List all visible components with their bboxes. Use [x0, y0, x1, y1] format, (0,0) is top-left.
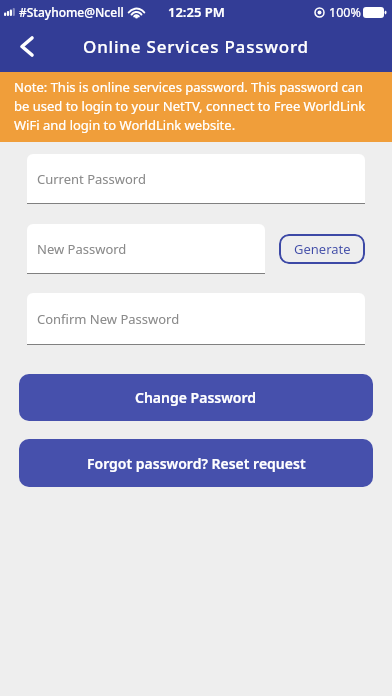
- staticText: Generate: [294, 240, 351, 258]
- button[interactable]: Change Password: [19, 374, 373, 421]
- staticText: 12:25 PM: [168, 3, 225, 21]
- staticText: #Stayhome@Ncell: [19, 4, 124, 20]
- button[interactable]: Generate: [279, 234, 365, 264]
- staticText: Change Password: [135, 388, 257, 407]
- staticText: Note: This is online services password. …: [14, 78, 378, 134]
- button[interactable]: Forgot password? Reset request: [19, 439, 373, 487]
- button[interactable]: Confirm New Password: [27, 293, 365, 345]
- button[interactable]: Current Password: [27, 154, 365, 204]
- staticText: New Password: [37, 240, 127, 258]
- staticText: Confirm New Password: [37, 310, 180, 328]
- staticText: Online Services Password: [83, 35, 309, 58]
- button[interactable]: [11, 30, 43, 62]
- button[interactable]: New Password: [27, 224, 265, 274]
- staticText: Current Password: [37, 170, 146, 188]
- staticText: 100%: [329, 4, 361, 21]
- staticText: Forgot password? Reset request: [87, 454, 306, 473]
